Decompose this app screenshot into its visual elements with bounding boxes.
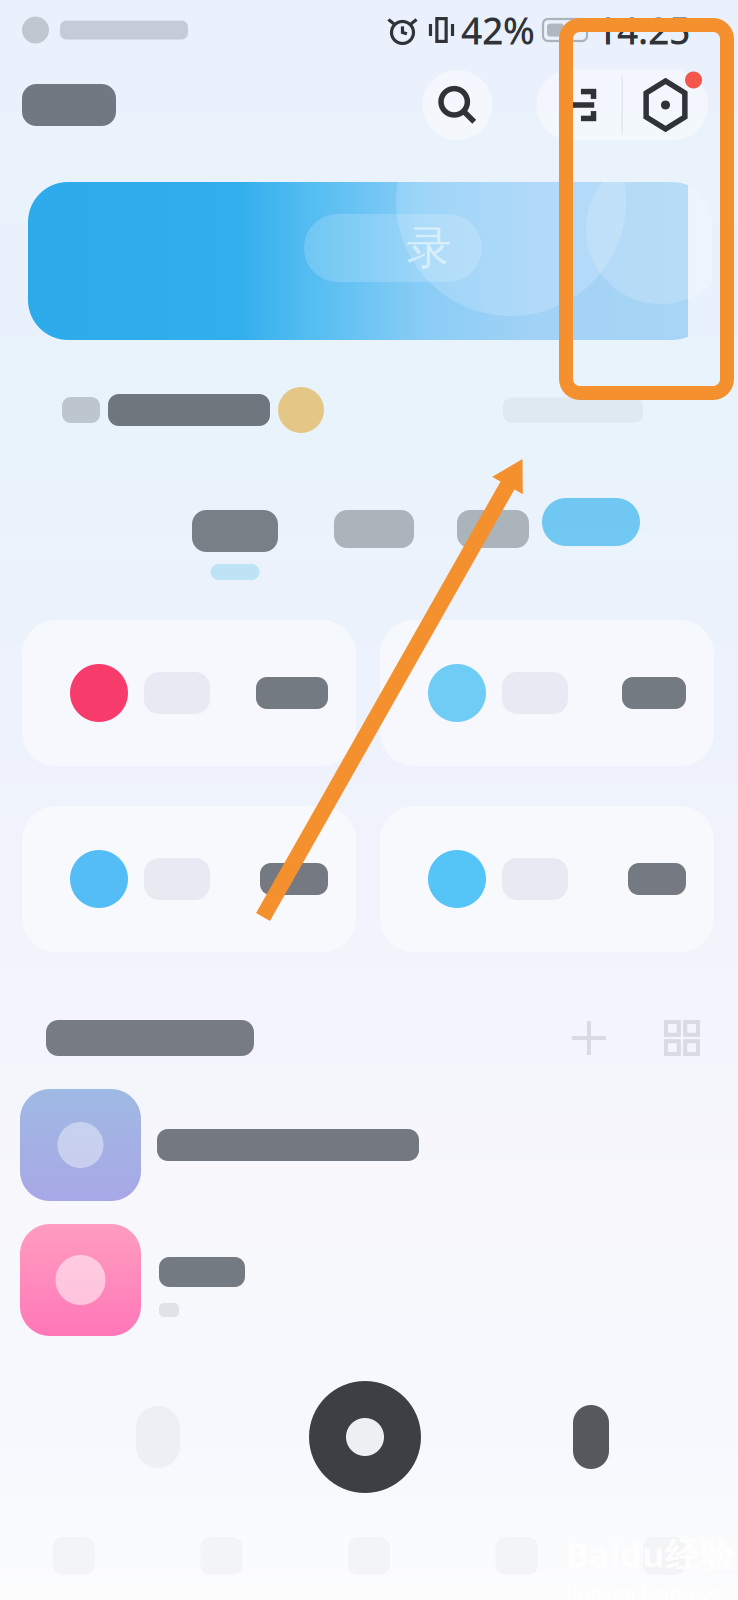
button[interactable]: Add device <box>623 69 708 140</box>
button[interactable]: Browser <box>573 1380 609 1494</box>
staticText: 42% <box>461 5 535 55</box>
button[interactable]: Phone <box>136 1380 180 1494</box>
button[interactable] <box>22 806 356 952</box>
button[interactable] <box>542 510 640 546</box>
button[interactable] <box>380 806 714 952</box>
button[interactable] <box>0 1089 738 1201</box>
button[interactable]: Share <box>536 69 621 140</box>
button[interactable]: Add device <box>556 1005 622 1071</box>
button[interactable] <box>457 510 529 548</box>
button[interactable] <box>380 620 714 766</box>
staticText: 录 <box>406 220 451 276</box>
button[interactable]: Change layout <box>650 1006 714 1070</box>
button[interactable] <box>334 510 414 548</box>
button[interactable] <box>22 620 356 766</box>
button[interactable]: Camera <box>309 1380 421 1494</box>
button[interactable] <box>0 1224 738 1336</box>
button[interactable] <box>0 380 738 440</box>
button[interactable]: Search <box>422 70 492 140</box>
button[interactable] <box>192 510 278 580</box>
staticText: Baidu经验 <box>566 1531 735 1577</box>
staticText: 14:25 <box>596 5 690 55</box>
